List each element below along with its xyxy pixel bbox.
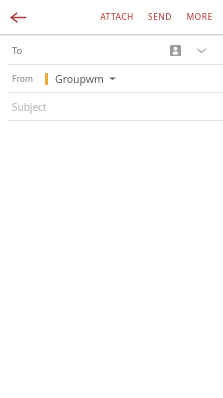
staticText: From — [12, 73, 33, 85]
button[interactable]: ATTACH — [96, 5, 138, 29]
button[interactable]: Choose contact — [163, 38, 187, 62]
button[interactable]: To — [0, 36, 223, 64]
staticText: MORE — [186, 11, 213, 23]
button[interactable]: From — [0, 65, 223, 92]
staticText: ATTACH — [100, 11, 134, 23]
button[interactable]: SEND — [144, 5, 176, 29]
button[interactable]: MORE — [182, 5, 217, 29]
staticText: Subject — [12, 100, 47, 114]
staticText: SEND — [148, 11, 172, 23]
staticText: To — [12, 44, 23, 57]
staticText: Groupwm — [55, 72, 104, 86]
button[interactable]: Show Cc and Bcc — [189, 38, 213, 62]
button[interactable]: Subject — [0, 93, 223, 120]
button[interactable]: Back — [4, 3, 32, 31]
